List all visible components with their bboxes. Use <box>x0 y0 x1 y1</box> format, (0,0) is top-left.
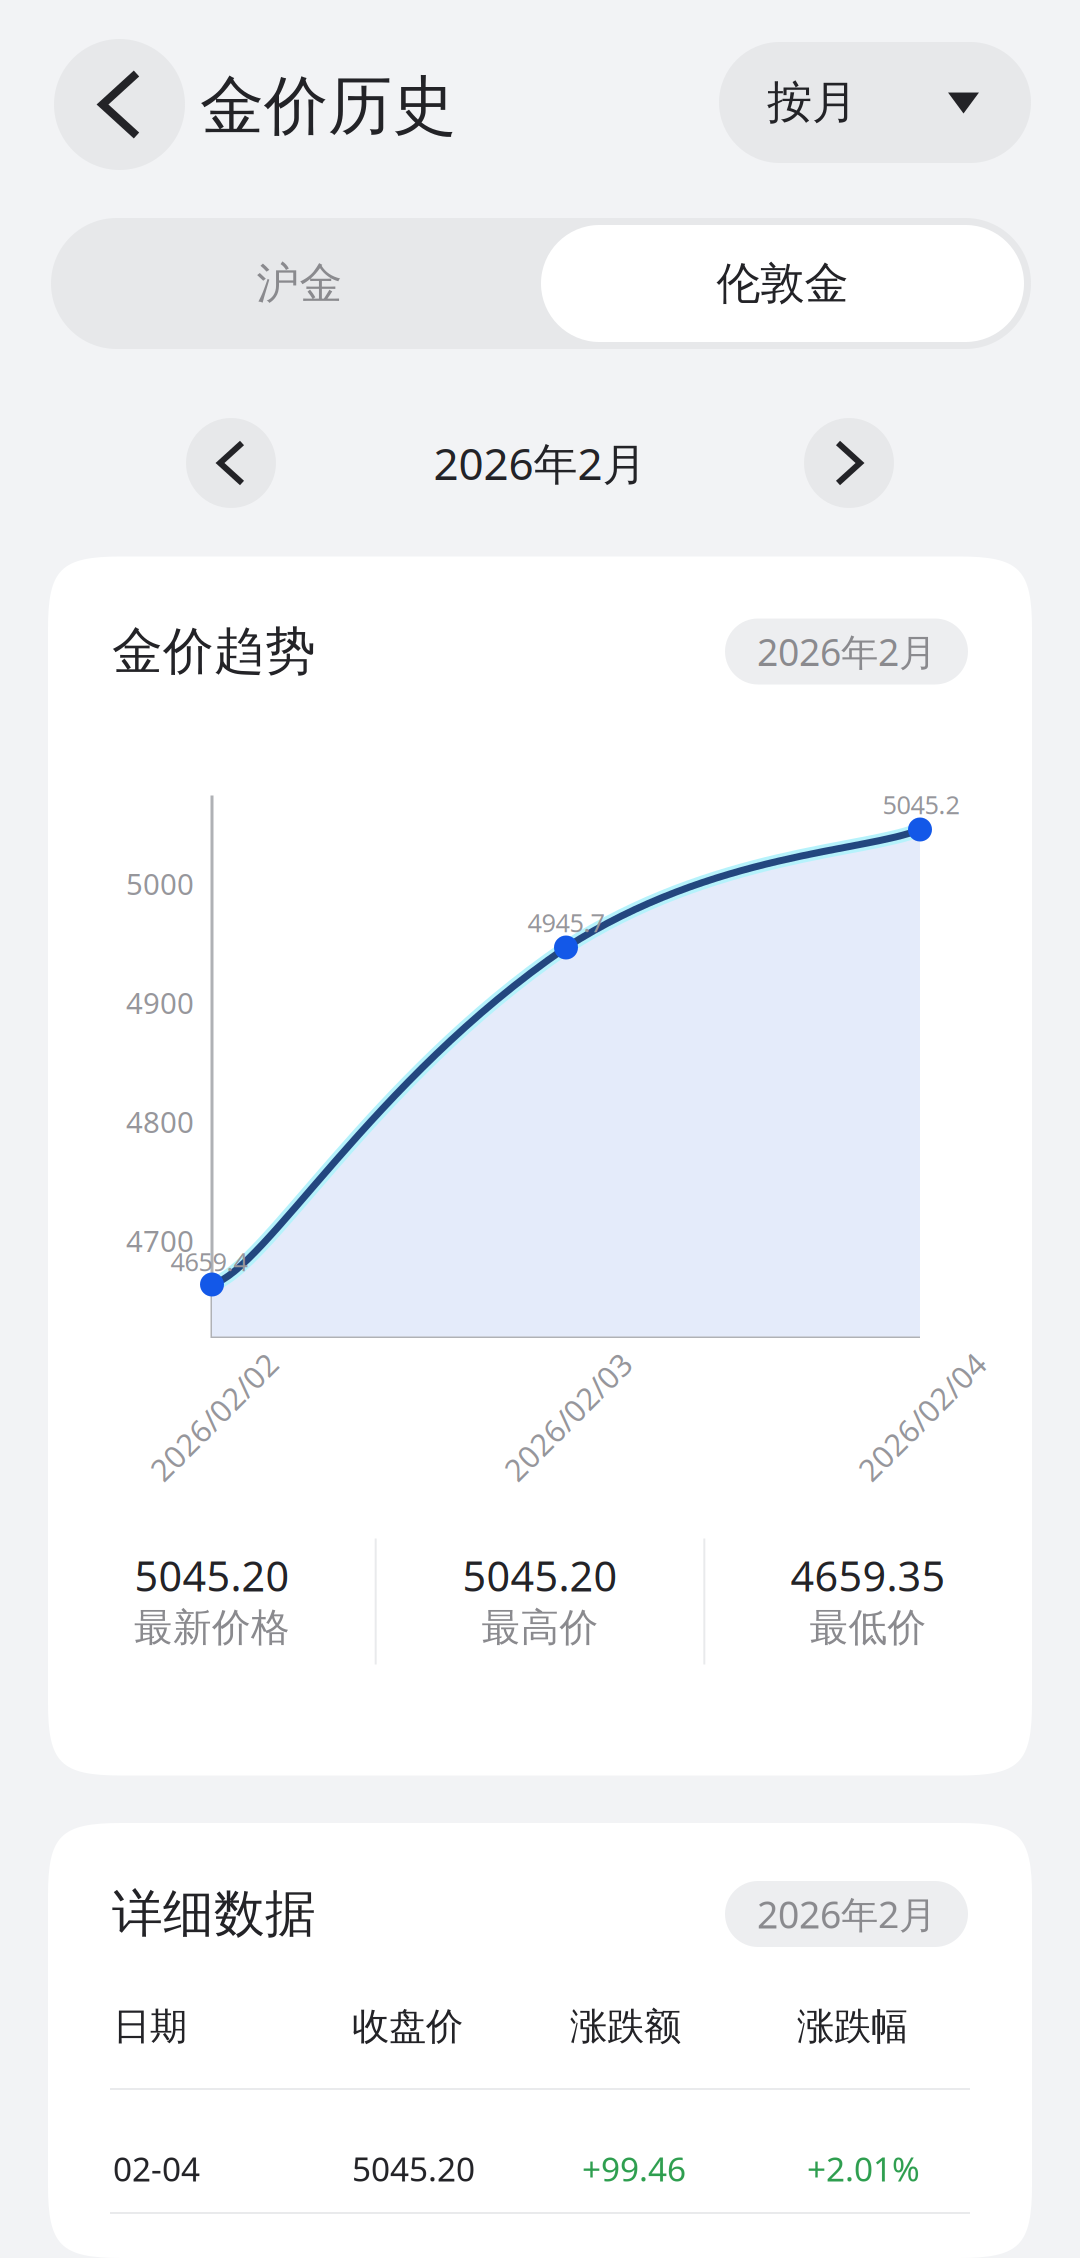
staticText: 4659.4 <box>170 1245 247 1278</box>
button[interactable]: Previous month <box>186 418 276 508</box>
staticText: 最低价 <box>809 1604 926 1651</box>
staticText: 5000 <box>126 864 194 903</box>
staticText: 收盘价 <box>352 2004 463 2049</box>
staticText: 02-04 <box>113 2146 200 2191</box>
staticText: 4800 <box>126 1102 194 1141</box>
staticText: 2026年2月 <box>757 627 936 676</box>
staticText: 涨跌幅 <box>797 2004 908 2049</box>
staticText: 5045.2 <box>882 788 959 821</box>
staticText: 沪金 <box>256 257 342 310</box>
staticText: 详细数据 <box>112 1883 316 1945</box>
staticText: 2026年2月 <box>757 1889 936 1939</box>
button[interactable]: 伦敦金 <box>541 225 1024 342</box>
staticText: +99.46 <box>582 2146 686 2191</box>
staticText: 2026/02/04 <box>839 1396 1005 1437</box>
staticText: 金价趋势 <box>112 620 316 683</box>
staticText: 2026年2月 <box>433 434 646 492</box>
staticText: 4900 <box>126 983 194 1022</box>
staticText: 4700 <box>126 1221 194 1260</box>
staticText: 4659.35 <box>790 1548 945 1603</box>
staticText: 金价历史 <box>200 67 456 146</box>
staticText: 按月 <box>767 75 857 130</box>
button[interactable]: 沪金 <box>58 225 541 342</box>
staticText: 2026/02/02 <box>131 1396 297 1437</box>
staticText: 伦敦金 <box>716 256 848 310</box>
staticText: 5045.20 <box>462 1548 617 1603</box>
button[interactable]: Back <box>54 39 185 170</box>
staticText: 日期 <box>113 2004 187 2049</box>
staticText: 5045.20 <box>352 2146 475 2191</box>
button[interactable]: 按月 <box>719 42 1031 163</box>
staticText: 5045.20 <box>134 1548 289 1603</box>
staticText: 涨跌额 <box>570 2004 681 2049</box>
staticText: 最高价 <box>481 1604 598 1651</box>
staticText: +2.01% <box>807 2146 920 2191</box>
staticText: 4945.7 <box>527 906 604 939</box>
button[interactable]: Next month <box>804 418 894 508</box>
staticText: 2026/02/03 <box>485 1396 651 1437</box>
staticText: 最新价格 <box>134 1604 290 1651</box>
